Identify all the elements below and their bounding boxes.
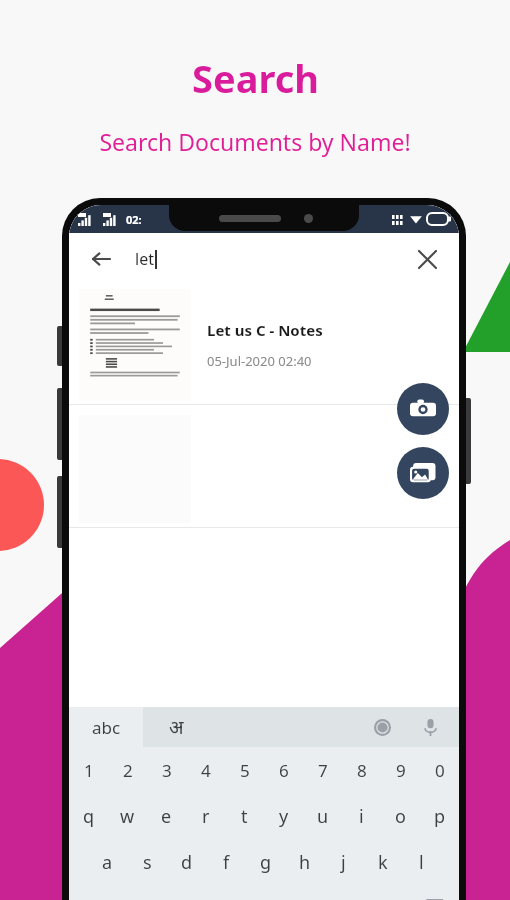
button[interactable]: q [69,793,108,839]
staticText: a [102,850,113,875]
staticText: l [419,850,424,875]
staticText: k [378,850,388,875]
staticText: q [83,804,95,829]
button[interactable]: j [324,839,363,885]
staticText: 0 [435,759,445,782]
staticText: i [359,804,364,829]
button[interactable]: f [207,839,246,885]
staticText: j [341,850,346,875]
button[interactable]: p [420,793,459,839]
staticText: 9 [396,759,406,782]
button[interactable]: 7 [303,747,342,793]
staticText: abc [92,716,121,739]
button[interactable]: 3 [147,747,186,793]
staticText: f [223,850,230,875]
button[interactable]: 0 [420,747,459,793]
button[interactable]: Clear search [409,241,445,277]
staticText: g [260,850,272,875]
button[interactable]: abc [69,707,143,747]
staticText: Let us C - Notes [207,320,323,340]
button[interactable]: Voice input [415,712,445,742]
button[interactable]: 4 [186,747,225,793]
staticText: y [279,804,289,829]
button[interactable]: 8 [342,747,381,793]
staticText: let [135,248,154,270]
button[interactable]: t [225,793,264,839]
staticText: 8 [357,759,367,782]
staticText: r [202,804,210,829]
button[interactable]: 2 [108,747,147,793]
staticText: 6 [279,759,289,782]
button[interactable]: 5 [225,747,264,793]
staticText: t [241,804,248,829]
staticText: p [434,804,446,829]
button[interactable]: w [108,793,147,839]
button[interactable]: r [186,793,225,839]
button[interactable]: h [285,839,324,885]
button[interactable]: Back [83,241,119,277]
staticText: o [395,804,406,829]
staticText: 5 [240,759,250,782]
staticText: 02: [126,212,142,227]
button[interactable]: u [303,793,342,839]
button[interactable]: o [381,793,420,839]
staticText: 4 [201,759,211,782]
staticText: 05-Jul-2020 02:40 [207,352,312,370]
button[interactable]: g [246,839,285,885]
staticText: u [317,804,329,829]
staticText: 2 [123,759,133,782]
staticText: 3 [162,759,172,782]
button[interactable]: Pick from gallery [397,447,449,499]
button[interactable]: k [363,839,402,885]
staticText: Search [192,52,319,104]
button[interactable]: Scan with camera [397,383,449,435]
button[interactable] [69,410,459,528]
staticText: 7 [318,759,328,782]
staticText: अ [169,714,184,740]
button[interactable]: 6 [264,747,303,793]
staticText: h [299,850,311,875]
staticText: Search Documents by Name! [99,126,411,157]
button[interactable]: d [167,839,207,885]
button[interactable]: 9 [381,747,420,793]
button[interactable]: y [264,793,303,839]
button[interactable]: Help [367,712,397,742]
button[interactable]: s [127,839,167,885]
button[interactable]: अ [143,707,459,747]
staticText: d [181,850,193,875]
button[interactable]: Backspace [403,885,459,900]
button[interactable]: a [87,839,127,885]
button[interactable]: l [402,839,441,885]
button[interactable]: 1 [69,747,108,793]
button[interactable]: Let us C - Notes [69,285,459,405]
staticText: w [120,804,135,829]
staticText: 1 [84,759,94,782]
button[interactable]: i [342,793,381,839]
staticText: e [161,804,172,829]
button[interactable]: e [147,793,186,839]
staticText: s [143,850,152,875]
